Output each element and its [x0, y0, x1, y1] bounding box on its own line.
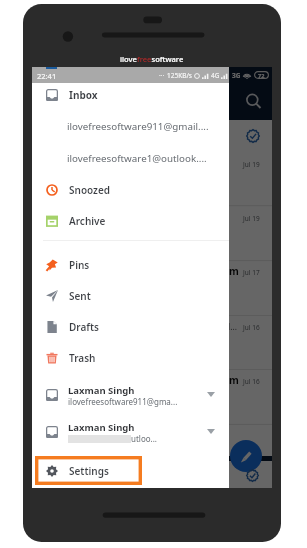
- button[interactable]: Compose: [230, 440, 262, 472]
- staticText: 3G: [232, 71, 241, 80]
- staticText: Jul 16: [243, 377, 260, 386]
- button[interactable]: Settings: [32, 455, 229, 486]
- button[interactable]: Laxman Singh: [32, 414, 229, 450]
- staticText: ilovefreesoftware911@gmail....: [67, 120, 209, 133]
- staticText: ···: [159, 71, 165, 80]
- staticText: Settings: [69, 464, 109, 478]
- staticText: utloo...: [131, 433, 158, 444]
- staticText: Laxman Singh: [68, 421, 135, 434]
- button[interactable]: Snoozed: [32, 174, 229, 205]
- button[interactable]: Archive: [32, 205, 229, 236]
- staticText: Sent: [69, 289, 91, 303]
- button[interactable]: Sent: [32, 280, 229, 311]
- staticText: Drafts: [69, 320, 100, 334]
- staticText: Jul 17: [243, 268, 260, 277]
- staticText: 125KB/s: [167, 71, 192, 80]
- staticText: Jul 16: [243, 323, 260, 332]
- staticText: Pins: [69, 258, 90, 272]
- staticText: Archive: [69, 214, 106, 228]
- button[interactable]: Drafts: [32, 311, 229, 342]
- staticText: 22:41: [37, 71, 57, 81]
- button[interactable]: Inbox: [32, 79, 229, 110]
- staticText: 4G: [211, 71, 220, 80]
- staticText: 72: [258, 72, 265, 79]
- staticText: ilovefreesoftware1@outlook....: [67, 152, 207, 165]
- button[interactable]: Search: [242, 90, 264, 112]
- staticText: Inbox: [69, 88, 98, 102]
- button[interactable]: Trash: [32, 342, 229, 373]
- button[interactable]: Laxman Singh: [32, 377, 229, 413]
- staticText: l...: [228, 321, 238, 333]
- button[interactable]: ilovefreesoftware1@outlook....: [32, 143, 229, 174]
- button[interactable]: ilovefreesoftware911@gmail....: [32, 111, 229, 142]
- staticText: Laxman Singh: [68, 384, 135, 397]
- staticText: m: [229, 373, 239, 387]
- staticText: Snoozed: [69, 183, 111, 197]
- button[interactable]: Pins: [32, 249, 229, 280]
- staticText: Jul 19: [243, 214, 260, 223]
- staticText: Jul 19: [243, 160, 260, 169]
- staticText: ilovefreesoftware911@gma...: [68, 396, 178, 407]
- staticText: m: [229, 264, 239, 278]
- staticText: Trash: [69, 351, 96, 365]
- staticText: ilovefreesoftware: [120, 54, 184, 64]
